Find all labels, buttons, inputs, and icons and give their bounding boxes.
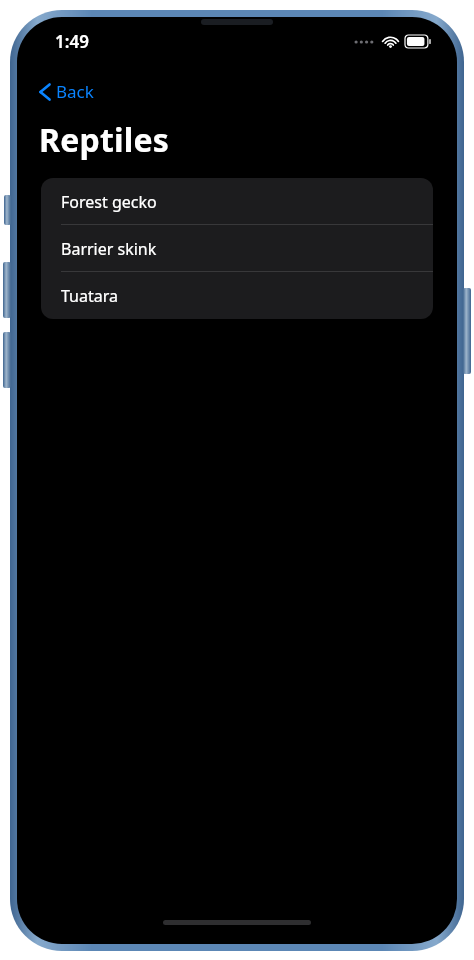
staticText: Forest gecko (61, 191, 157, 213)
button[interactable]: Barrier skink (41, 225, 433, 272)
staticText: Barrier skink (61, 238, 157, 260)
button[interactable]: Forest gecko (41, 178, 433, 225)
staticText: Back (56, 80, 94, 103)
button[interactable]: Tuatara (41, 272, 433, 319)
button[interactable]: Back (35, 77, 98, 106)
staticText: 1:49 (55, 30, 89, 53)
staticText: Reptiles (39, 118, 170, 162)
staticText: Tuatara (61, 285, 118, 307)
other: Home indicator (163, 920, 311, 925)
